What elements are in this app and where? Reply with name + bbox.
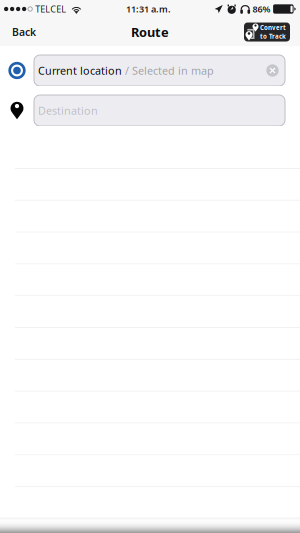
staticText: 11:31 a.m. [126, 3, 171, 15]
button[interactable]: Convert [244, 22, 290, 41]
button[interactable]: Clear text [264, 62, 281, 79]
staticText: Convert [260, 23, 286, 32]
staticText: Back [12, 25, 36, 39]
staticText: Route [131, 23, 169, 41]
staticText: to Track [260, 32, 286, 41]
staticText: Current location [38, 63, 122, 78]
staticText: / Selected in map [122, 63, 214, 78]
button[interactable] [0, 518, 300, 533]
staticText: TELCEL [35, 3, 66, 15]
staticText: 86% [253, 3, 271, 15]
button[interactable]: Back [0, 18, 47, 46]
staticText: Destination [38, 103, 98, 118]
